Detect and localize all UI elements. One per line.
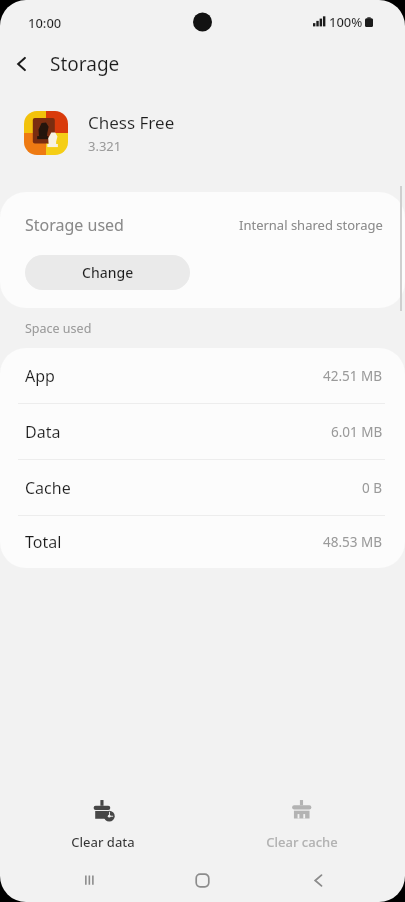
staticText: App [25,365,55,387]
staticText: Storage used [25,214,124,236]
staticText: 3.321 [88,137,122,155]
button[interactable]: Clear data [8,790,198,858]
button[interactable]: Recents [68,858,112,902]
staticText: 48.53 MB [323,533,383,551]
staticText: Clear data [71,833,135,851]
staticText: 10:00 [28,14,62,32]
staticText: Chess Free [88,111,175,134]
button[interactable]: Clear cache [207,790,397,858]
staticText: Space used [25,320,92,337]
button[interactable]: Back [296,858,340,902]
staticText: Storage [50,51,120,77]
button[interactable]: Cache [0,460,405,516]
staticText: 6.01 MB [331,423,383,441]
staticText: Internal shared storage [239,216,383,234]
button[interactable]: Total [0,516,405,568]
staticText: Total [25,531,62,553]
staticText: Change [82,263,134,282]
staticText: 0 B [362,479,383,497]
staticText: Clear cache [266,833,338,851]
staticText: Cache [25,477,71,499]
staticText: 42.51 MB [323,367,383,385]
button[interactable]: Back [0,44,44,84]
staticText: 100% [329,13,363,31]
button[interactable]: Home [180,858,224,902]
button[interactable]: Data [0,404,405,460]
button[interactable]: App [0,348,405,404]
staticText: Data [25,421,61,443]
button[interactable]: Change [25,255,190,290]
